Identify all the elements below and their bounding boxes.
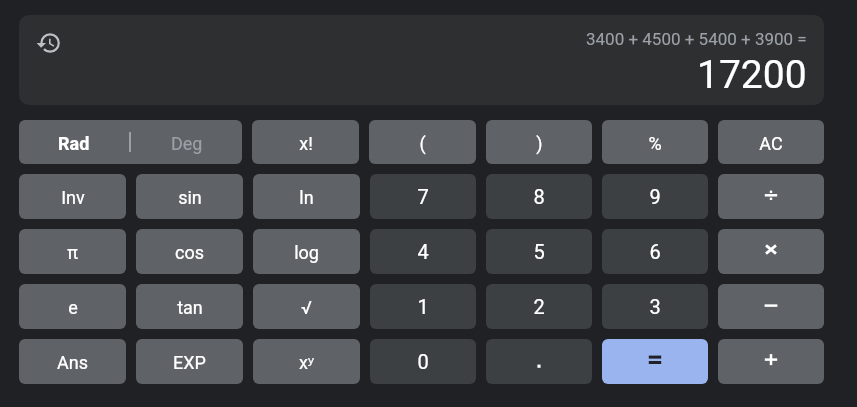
button[interactable]: x! [252,120,359,164]
button[interactable]: 5 [486,229,592,274]
staticText: AC [759,133,783,154]
staticText: x! [299,133,313,154]
button[interactable]: 7 [370,174,476,219]
staticText: sin [178,187,202,208]
button[interactable]: 2 [486,284,592,329]
button[interactable]: EXP [136,339,243,384]
button[interactable]: 4 [370,229,476,274]
button[interactable]: 0 [370,339,476,384]
staticText: 3400 + 4500 + 5400 + 3900 = [586,29,807,49]
button[interactable]: ( [369,120,476,164]
staticText: 0 [417,350,429,373]
staticText: Inv [61,187,85,208]
button[interactable]: 3 [602,284,708,329]
button[interactable]: cos [136,229,243,274]
staticText: 9 [649,185,661,208]
staticText: xʸ [299,350,314,375]
staticText: % [648,133,662,154]
staticText: √ [301,297,312,318]
button[interactable]: Equals [602,339,708,384]
staticText: 17200 [697,52,807,98]
button[interactable]: Ans [19,339,126,384]
button[interactable]: Rad [19,120,242,164]
staticText: Ans [57,352,88,373]
button[interactable]: Decimal point [486,339,592,384]
button[interactable]: 9 [602,174,708,219]
button[interactable]: tan [136,284,243,329]
button[interactable]: e [19,284,126,329]
staticText: π [67,242,78,263]
staticText: Rad [58,133,90,154]
staticText: 1 [417,295,429,318]
button[interactable]: π [19,229,126,274]
staticText: 3 [649,295,661,318]
button[interactable]: AC [718,120,824,164]
staticText: 5 [533,240,545,263]
staticText: 4 [417,240,429,263]
staticText: 6 [649,240,661,263]
button[interactable]: xʸ [253,339,360,384]
staticText: EXP [173,352,206,373]
button[interactable]: √ [253,284,360,329]
button[interactable]: Add [718,339,824,384]
button[interactable]: Inv [19,174,126,219]
button[interactable]: 6 [602,229,708,274]
staticText: Deg [171,133,203,154]
staticText: ) [536,133,543,154]
staticText: 7 [417,185,429,208]
button[interactable]: Divide [718,174,824,219]
button[interactable]: % [602,120,708,164]
staticText: ln [299,187,314,208]
staticText: log [294,242,319,263]
button[interactable]: Subtract [718,284,824,329]
staticText: ( [419,133,426,154]
button[interactable]: sin [136,174,243,219]
button[interactable]: 8 [486,174,592,219]
staticText: cos [175,242,204,263]
staticText: tan [177,297,203,318]
button[interactable]: log [253,229,360,274]
staticText: 2 [533,295,545,318]
button[interactable]: ) [486,120,592,164]
button[interactable]: 1 [370,284,476,329]
button[interactable]: History [28,22,70,64]
button[interactable]: ln [253,174,360,219]
staticText: e [68,297,78,318]
staticText: 8 [533,185,545,208]
button[interactable]: Multiply [718,229,824,274]
